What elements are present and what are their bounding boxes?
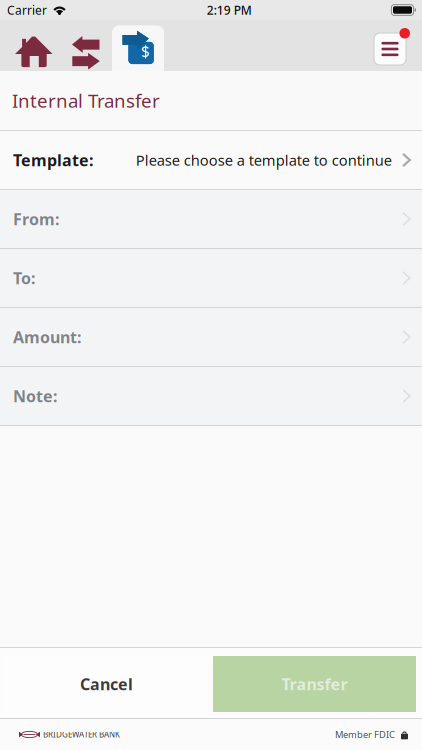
button[interactable]: Menu [374,20,410,71]
staticText: Cancel [80,673,133,695]
button[interactable]: Template: [0,131,422,189]
staticText: Carrier [7,2,47,18]
button[interactable]: Transfer [213,656,416,712]
staticText: Please choose a template to continue [136,150,392,170]
button[interactable]: Cancel [5,656,208,712]
staticText: Transfer [281,673,347,695]
staticText: Member FDIC [335,728,395,741]
button[interactable]: Amount: [0,308,422,366]
button[interactable]: Home [8,20,60,71]
button[interactable]: Transfers [60,20,112,71]
staticText: Internal Transfer [12,88,160,113]
staticText: Note: [13,385,57,407]
button[interactable]: Internal Transfer [112,20,164,71]
button[interactable]: From: [0,190,422,248]
staticText: From: [13,208,59,230]
staticText: BRIDGEWATER BANK [43,729,120,740]
button[interactable]: To: [0,249,422,307]
staticText: Amount: [13,326,81,348]
staticText: Template: [13,149,93,171]
staticText: 2:19 PM [207,2,252,18]
button[interactable]: Note: [0,367,422,425]
staticText: To: [13,267,35,289]
